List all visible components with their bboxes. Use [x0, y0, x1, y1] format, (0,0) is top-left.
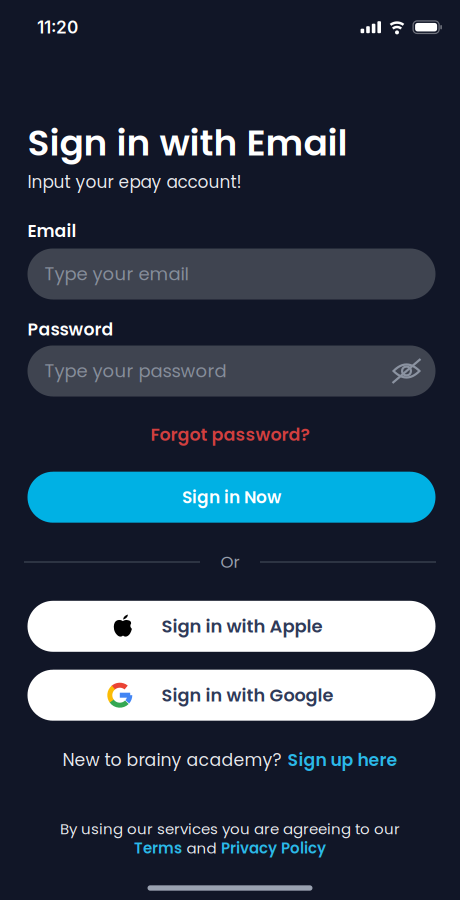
- staticText: Email: [27, 219, 76, 243]
- button[interactable]: Sign in Now: [27, 472, 435, 523]
- staticText: Type your email: [44, 261, 188, 287]
- staticText: Sign in with Email: [27, 118, 347, 168]
- button[interactable]: Sign in with Google: [27, 670, 435, 721]
- staticText: By using our services you are agreeing t…: [60, 818, 400, 839]
- staticText: Input your epay account!: [27, 170, 241, 194]
- staticText: and: [186, 838, 216, 859]
- staticText: Sign in with Apple: [161, 614, 322, 639]
- staticText: Or: [220, 550, 239, 573]
- button[interactable]: Privacy Policy: [221, 838, 326, 859]
- staticText: Sign in with Google: [161, 683, 333, 708]
- staticText: Sign in Now: [182, 485, 281, 509]
- staticText: Type your password: [44, 358, 226, 384]
- button[interactable]: Sign up here: [287, 748, 397, 772]
- button[interactable]: Forgot password?: [150, 422, 309, 447]
- staticText: 11:20: [37, 17, 78, 38]
- staticText: Password: [27, 317, 113, 342]
- staticText: Forgot password?: [150, 422, 309, 447]
- button[interactable]: Terms: [134, 838, 182, 859]
- staticText: New to brainy academy?: [62, 748, 281, 772]
- staticText: Privacy Policy: [221, 838, 326, 859]
- button[interactable]: Show password: [391, 358, 421, 384]
- staticText: Terms: [134, 838, 182, 859]
- staticText: Sign up here: [287, 748, 397, 772]
- button[interactable]: Sign in with Apple: [27, 601, 435, 652]
